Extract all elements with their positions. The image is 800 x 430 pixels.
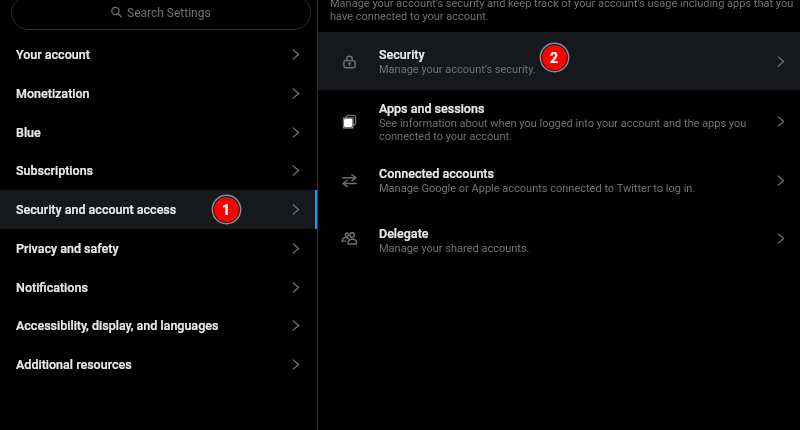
button[interactable]: Your account <box>0 35 317 74</box>
button[interactable]: Connected accounts <box>318 155 800 215</box>
staticText: Search Settings <box>127 6 211 20</box>
staticText: Accessibility, display, and languages <box>16 318 219 333</box>
button[interactable]: Security and account access <box>0 190 317 229</box>
staticText: Monetization <box>16 86 90 101</box>
staticText: Additional resources <box>16 357 132 372</box>
other: Delegate <box>341 230 358 247</box>
button[interactable]: Privacy and safety <box>0 229 317 268</box>
button[interactable]: Apps and sessions <box>318 90 800 155</box>
staticText: Delegate <box>379 226 429 241</box>
staticText: Privacy and safety <box>16 241 119 256</box>
staticText: Security <box>379 47 425 62</box>
button[interactable]: Additional resources <box>0 345 317 384</box>
staticText: 2 <box>550 50 559 66</box>
staticText: See information about when you logged in… <box>379 117 757 143</box>
staticText: Notifications <box>16 280 88 295</box>
button[interactable]: Search Settings <box>11 0 311 30</box>
button[interactable]: Blue <box>0 113 317 152</box>
staticText: Connected accounts <box>379 166 494 181</box>
staticText: Subscriptions <box>16 163 94 178</box>
button[interactable]: Accessibility, display, and languages <box>0 306 317 345</box>
button[interactable]: Security <box>318 32 800 90</box>
staticText: Manage your shared accounts. <box>379 242 530 255</box>
staticText: Blue <box>16 125 41 140</box>
staticText: Manage your account’s security. <box>379 63 536 76</box>
button[interactable]: Delegate <box>318 215 800 275</box>
other: Security <box>341 53 358 70</box>
button[interactable]: Subscriptions <box>0 151 317 190</box>
other: Connected accounts <box>341 172 358 189</box>
staticText: Manage Google or Apple accounts connecte… <box>379 182 696 195</box>
staticText: Security and account access <box>16 202 177 217</box>
staticText: Manage your account’s security and keep … <box>330 0 794 23</box>
other: Apps and sessions <box>341 113 358 130</box>
staticText: 1 <box>222 202 231 218</box>
staticText: Apps and sessions <box>379 101 485 116</box>
staticText: Your account <box>16 47 90 62</box>
button[interactable]: Monetization <box>0 74 317 113</box>
button[interactable]: Notifications <box>0 268 317 307</box>
